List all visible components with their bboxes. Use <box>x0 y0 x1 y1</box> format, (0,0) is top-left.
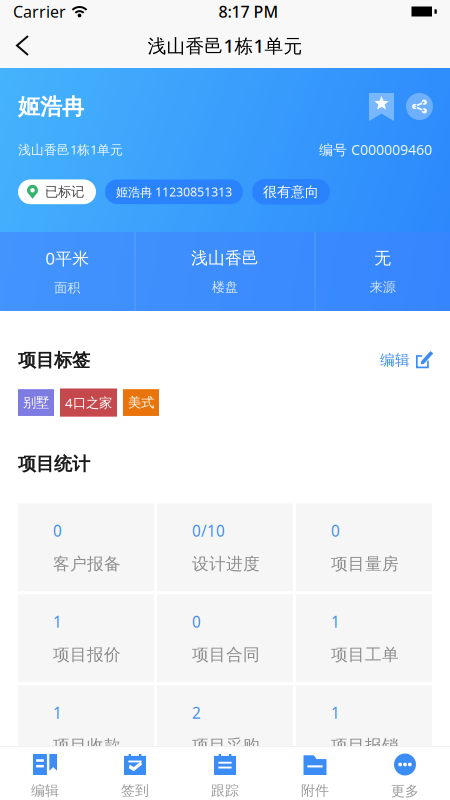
button[interactable]: 已标记 <box>18 179 96 204</box>
staticText: 项目报价 <box>53 644 121 665</box>
button[interactable]: 签到 <box>90 754 180 799</box>
button[interactable]: 0 <box>18 503 154 591</box>
button[interactable]: 美式 <box>123 389 159 416</box>
button[interactable]: 0 <box>296 503 432 591</box>
button[interactable]: Back <box>0 23 44 68</box>
button[interactable]: 0/10 <box>157 503 293 591</box>
staticText: 无 <box>374 248 391 269</box>
staticText: 跟踪 <box>211 782 239 799</box>
staticText: 更多 <box>391 782 419 800</box>
staticText: 项目统计 <box>18 453 90 475</box>
button[interactable]: 1 <box>18 594 154 682</box>
staticText: 0 <box>53 520 62 541</box>
button[interactable]: 1 <box>18 685 154 773</box>
staticText: 0/10 <box>192 520 225 541</box>
staticText: 编辑 <box>380 351 410 369</box>
button[interactable]: 1 <box>296 594 432 682</box>
button[interactable]: 2 <box>157 685 293 773</box>
staticText: 8:17 PM <box>218 1 278 22</box>
staticText: 已标记 <box>45 183 84 200</box>
staticText: 美式 <box>128 394 154 411</box>
staticText: 来源 <box>370 279 396 295</box>
button[interactable]: 无 <box>315 248 450 295</box>
button[interactable]: 4口之家 <box>60 388 117 417</box>
button[interactable]: 编辑 <box>0 754 90 799</box>
staticText: 1 <box>331 702 340 723</box>
staticText: 项目工单 <box>331 644 399 665</box>
staticText: 1 <box>331 611 340 632</box>
button[interactable]: 编辑 <box>380 348 432 372</box>
staticText: 姬浩冉 <box>18 93 84 121</box>
staticText: 浅山香邑1栋1单元 <box>147 33 302 58</box>
staticText: 编辑 <box>31 782 59 799</box>
staticText: 楼盘 <box>212 279 238 295</box>
staticText: 项目标签 <box>18 349 90 372</box>
staticText: 项目采购 <box>192 735 260 756</box>
staticText: 很有意向 <box>263 183 319 201</box>
staticText: 客户报备 <box>53 553 121 574</box>
button[interactable]: 0 <box>157 594 293 682</box>
button[interactable]: 更多 <box>360 753 450 800</box>
button[interactable]: 很有意向 <box>252 179 330 205</box>
button[interactable]: 附件 <box>270 754 360 799</box>
staticText: 浅山香邑 <box>191 248 259 269</box>
staticText: 附件 <box>301 782 329 799</box>
button[interactable]: 跟踪 <box>180 754 270 799</box>
staticText: 浅山香邑1栋1单元 <box>18 141 123 158</box>
staticText: 0平米 <box>45 247 89 270</box>
staticText: 别墅 <box>23 394 49 411</box>
staticText: 4口之家 <box>65 393 112 412</box>
staticText: 项目收款 <box>53 735 121 756</box>
staticText: 编号 C000009460 <box>319 140 432 159</box>
button[interactable]: Favorite <box>369 93 394 121</box>
staticText: Carrier <box>13 1 66 22</box>
button[interactable]: Share <box>406 93 433 120</box>
button[interactable]: 姬浩冉 11230851313 <box>105 179 243 204</box>
staticText: 设计进度 <box>192 553 260 574</box>
button[interactable]: 1 <box>296 685 432 773</box>
staticText: 签到 <box>121 782 149 799</box>
staticText: 面积 <box>54 280 80 296</box>
staticText: 项目量房 <box>331 553 399 574</box>
staticText: 姬浩冉 11230851313 <box>116 183 232 200</box>
staticText: 0 <box>192 611 201 632</box>
button[interactable]: 别墅 <box>18 389 54 416</box>
staticText: 2 <box>192 702 201 723</box>
staticText: 1 <box>53 702 62 723</box>
staticText: 0 <box>331 520 340 541</box>
staticText: 项目报销 <box>331 735 399 756</box>
button[interactable]: 浅山香邑 <box>135 248 314 295</box>
button[interactable]: 0平米 <box>0 247 134 296</box>
staticText: 项目合同 <box>192 644 260 665</box>
staticText: 1 <box>53 611 62 632</box>
